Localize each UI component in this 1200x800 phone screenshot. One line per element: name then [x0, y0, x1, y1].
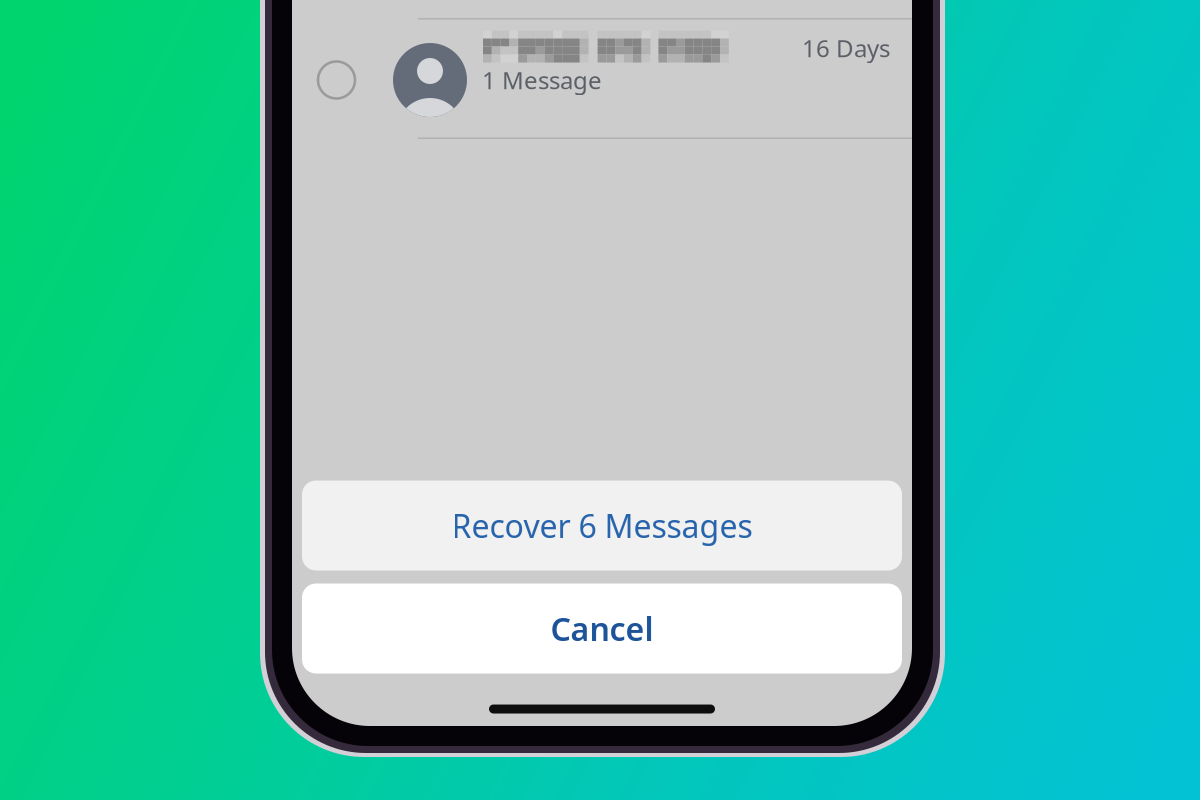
button[interactable]: Recover 6 Messages	[302, 480, 902, 570]
button[interactable]: Cancel	[302, 583, 902, 673]
staticText: Cancel	[550, 607, 653, 650]
staticText: 16 Days	[802, 32, 890, 64]
button[interactable]: 1 Message	[292, 18, 912, 139]
staticText: 1 Message	[482, 64, 602, 96]
staticText: Recover 6 Messages	[451, 504, 752, 547]
